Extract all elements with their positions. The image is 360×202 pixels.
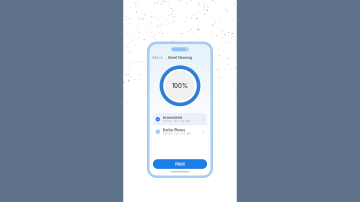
button[interactable]: Pause [149, 159, 210, 169]
staticText: ✓ [156, 130, 159, 134]
button[interactable]: ✓ [153, 125, 207, 138]
staticText: Screenshots [162, 116, 182, 119]
staticText: 100% [172, 82, 188, 89]
staticText: ✓ [156, 117, 159, 121]
button[interactable]: Back [149, 55, 163, 61]
staticText: Smart Cleaning [168, 56, 192, 59]
staticText: Photos: 320 (68 MB) [162, 132, 191, 135]
staticText: Photos: 140 (48 MB) [162, 120, 190, 123]
staticText: Back [155, 56, 163, 59]
staticText: Pause [175, 162, 185, 166]
button[interactable]: ✓ [153, 113, 207, 125]
staticText: Similar Photos [162, 128, 185, 132]
